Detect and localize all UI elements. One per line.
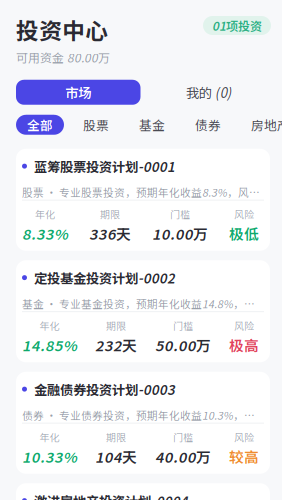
staticText: 股票 [83,116,109,134]
staticText: 可用资金 80.00万 [16,49,110,66]
staticText: 10.33% [22,446,77,467]
button[interactable]: 债券 [184,115,232,135]
button[interactable]: 市场 [16,80,140,105]
staticText: 基金 · 专业基金投资，预期年化收益14.8%，⋯ [22,296,255,311]
button[interactable]: 基金 [128,115,176,135]
button[interactable]: 全部 [16,115,64,135]
staticText: 极高 [229,335,259,355]
staticText: 336天 [89,223,131,244]
staticText: 蓝筹股票投资计划-0001 [34,157,175,176]
staticText: 门槛 [173,430,193,444]
button[interactable]: 蓝筹股票投资计划-0001 [16,149,270,251]
staticText: 定投基金投资计划-0002 [34,268,175,287]
staticText: 金融债券投资计划-0003 [34,380,175,399]
staticText: 年化 [39,318,59,333]
staticText: 较高 [229,446,259,467]
staticText: 10.00万 [152,223,208,244]
staticText: 风险 [234,318,254,333]
staticText: 14.85% [22,335,77,355]
staticText: 债券 · 专业债券投资，预期年化收益10.3%，⋯ [22,408,255,423]
button[interactable]: 房地产 [240,115,282,135]
staticText: 投资中心 [16,13,108,46]
button[interactable]: 01项投资 [203,16,271,35]
button[interactable]: 金融债券投资计划-0003 [16,372,270,474]
button[interactable]: 我的 (0) [146,80,271,105]
button[interactable]: 股票 [72,115,120,135]
staticText: 104天 [95,446,137,467]
staticText: 全部 [27,116,53,134]
staticText: 我的 (0) [186,83,232,102]
staticText: 股票 · 专业股票投资，预期年化收益8.3%，风⋯ [22,185,260,200]
staticText: 基金 [139,116,165,134]
staticText: 期限 [106,318,126,333]
staticText: 年化 [39,430,59,444]
staticText: 风险 [234,207,254,221]
staticText: 年化 [35,207,55,221]
staticText: 激进房地产投资计划-0004 [34,491,188,500]
staticText: 极低 [229,223,259,244]
staticText: 期限 [100,207,120,221]
staticText: 期限 [106,430,126,444]
staticText: 债券 [195,116,221,134]
staticText: 门槛 [173,318,193,333]
staticText: 8.33% [22,223,68,244]
staticText: 市场 [65,83,91,102]
staticText: 门槛 [170,207,190,221]
staticText: 40.00万 [155,446,211,467]
staticText: 房地产 [251,116,282,134]
staticText: 50.00万 [155,335,211,355]
button[interactable]: 定投基金投资计划-0002 [16,260,270,362]
button[interactable]: 激进房地产投资计划-0004 [16,483,270,500]
staticText: 232天 [95,335,137,355]
staticText: 01项投资 [212,17,262,34]
staticText: 风险 [234,430,254,444]
